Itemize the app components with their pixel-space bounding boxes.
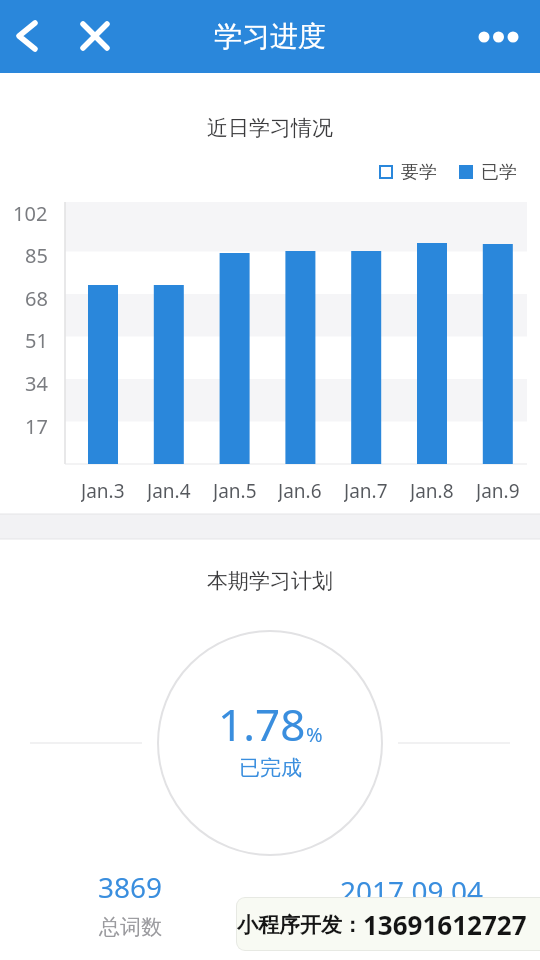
staticText: Jan.9 bbox=[476, 478, 520, 502]
staticText: Jan.6 bbox=[278, 478, 322, 502]
staticText: 要学 bbox=[401, 161, 437, 184]
button[interactable] bbox=[468, 15, 528, 59]
staticText: 本期学习计划 bbox=[207, 568, 333, 594]
staticText: 近日学习情况 bbox=[207, 115, 333, 141]
staticText: 小程序开发： bbox=[237, 912, 363, 938]
staticText: 3869 bbox=[98, 868, 163, 906]
staticText: 68 bbox=[25, 285, 48, 309]
staticText: Jan.3 bbox=[81, 478, 125, 502]
staticText: 34 bbox=[25, 370, 48, 394]
staticText: 17 bbox=[25, 413, 48, 437]
staticText: 已完成 bbox=[239, 755, 302, 781]
staticText: 总词数 bbox=[99, 914, 162, 940]
staticText: 13691612727 bbox=[363, 907, 527, 942]
staticText: Jan.7 bbox=[344, 478, 388, 502]
staticText: 已学 bbox=[481, 161, 517, 184]
button[interactable]: 小程序开发： bbox=[237, 898, 540, 950]
button[interactable] bbox=[6, 14, 50, 58]
staticText: Jan.4 bbox=[147, 478, 191, 502]
staticText: 1.78 bbox=[218, 694, 306, 754]
staticText: 102 bbox=[13, 200, 48, 224]
staticText: Jan.8 bbox=[410, 478, 454, 502]
staticText: Jan.5 bbox=[213, 478, 257, 502]
staticText: % bbox=[306, 721, 323, 748]
staticText: 51 bbox=[25, 327, 48, 351]
staticText: 2017.09.04 bbox=[340, 872, 484, 910]
button[interactable] bbox=[73, 14, 117, 58]
staticText: 学习进度 bbox=[214, 19, 326, 54]
staticText: 85 bbox=[25, 242, 48, 266]
